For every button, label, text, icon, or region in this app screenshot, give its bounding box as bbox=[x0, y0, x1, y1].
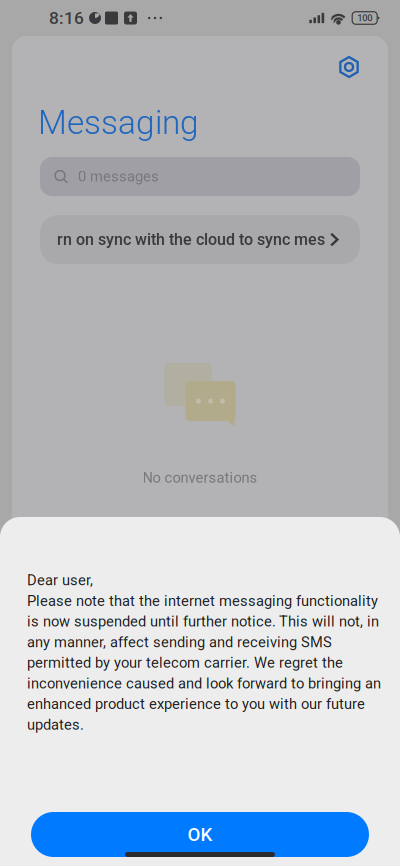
staticText: 0 messages bbox=[78, 168, 159, 185]
staticText: Messaging bbox=[38, 103, 199, 142]
staticText: Dear user, Please note that the internet… bbox=[27, 570, 381, 735]
staticText: 8:16 bbox=[49, 8, 84, 28]
staticText: OK bbox=[187, 824, 212, 845]
button[interactable]: 0 messages bbox=[40, 157, 360, 196]
button[interactable]: rn on sync with the cloud to sync mes bbox=[40, 215, 360, 264]
button[interactable]: OK bbox=[31, 812, 369, 857]
button[interactable]: Settings bbox=[331, 49, 367, 85]
staticText: rn on sync with the cloud to sync mes bbox=[57, 230, 325, 249]
staticText: 100 bbox=[357, 12, 372, 23]
staticText: No conversations bbox=[142, 469, 257, 486]
